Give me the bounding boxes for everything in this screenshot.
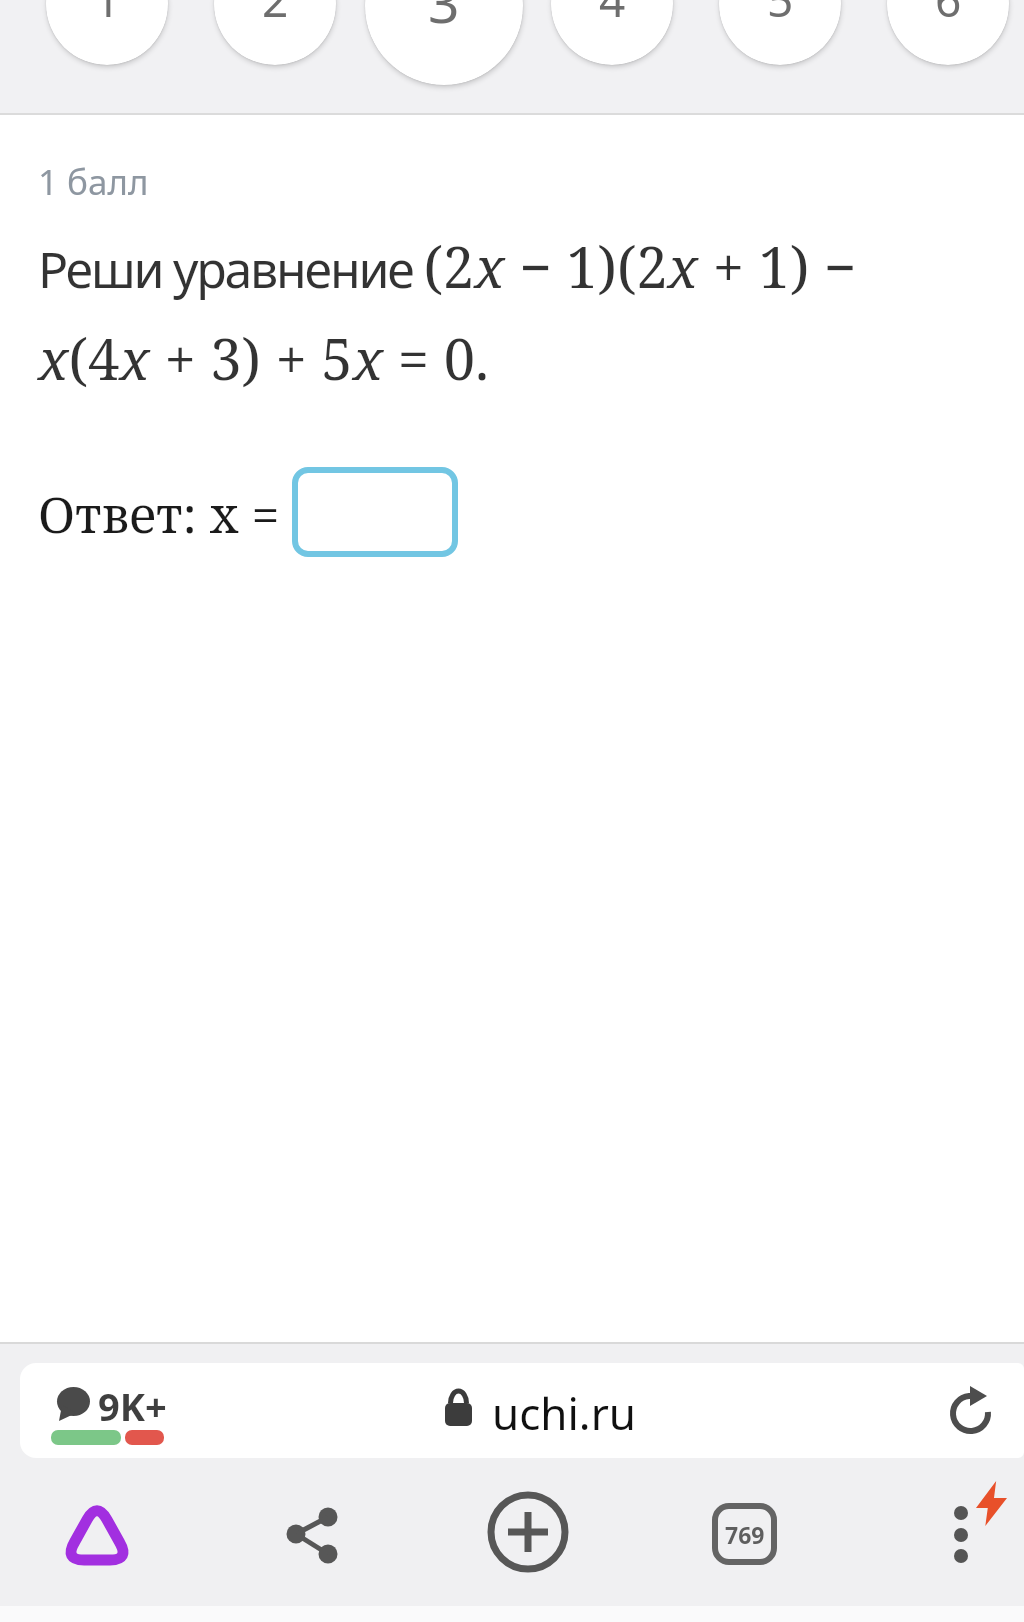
staticText: 769 xyxy=(725,1519,765,1550)
button[interactable]: 2 xyxy=(214,0,336,65)
button[interactable] xyxy=(292,467,458,557)
staticText: 6 xyxy=(935,0,962,31)
button[interactable] xyxy=(940,1380,1000,1440)
button[interactable] xyxy=(486,1490,571,1575)
button[interactable]: 5 xyxy=(719,0,841,65)
button[interactable]: 3 xyxy=(365,0,523,85)
staticText: 4 xyxy=(599,0,626,31)
staticText: 9K+ xyxy=(98,1380,167,1432)
staticText: uchi.ru xyxy=(492,1383,637,1443)
staticText: 5 xyxy=(767,0,794,31)
staticText: 1 xyxy=(94,0,121,31)
staticText: x(4x + 3) + 5x = 0. xyxy=(38,320,489,396)
button[interactable] xyxy=(55,1490,140,1575)
staticText: Ответ: x = xyxy=(38,480,280,548)
staticText: Реши уравнение (2x − 1)(2x + 1) − xyxy=(38,228,857,304)
staticText: 3 xyxy=(428,0,460,39)
staticText: 1 балл xyxy=(38,158,149,206)
button[interactable]: 1 xyxy=(46,0,168,65)
button[interactable]: 4 xyxy=(551,0,673,65)
button[interactable] xyxy=(920,1490,1005,1575)
button[interactable] xyxy=(270,1490,355,1575)
button[interactable]: 6 xyxy=(887,0,1009,65)
button[interactable] xyxy=(45,1375,175,1450)
staticText: 2 xyxy=(262,0,289,31)
button[interactable] xyxy=(702,1490,787,1575)
button[interactable] xyxy=(20,1363,1024,1458)
